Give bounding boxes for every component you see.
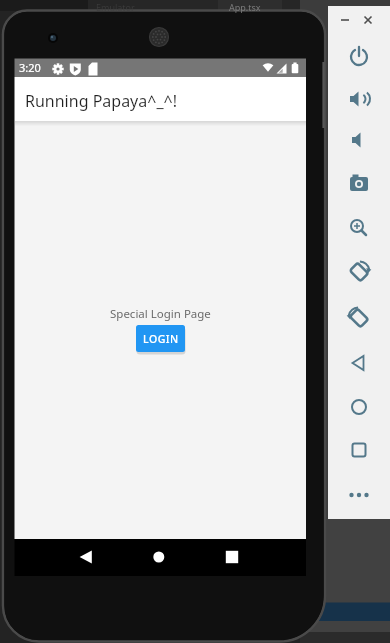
button[interactable]: [342, 39, 376, 73]
staticText: Emulator: [96, 1, 135, 13]
button[interactable]: [342, 167, 376, 201]
button[interactable]: [342, 82, 376, 116]
staticText: LOGIN: [143, 332, 179, 346]
button[interactable]: [342, 433, 376, 467]
button[interactable]: [342, 211, 376, 245]
button[interactable]: [342, 346, 376, 380]
button[interactable]: [342, 255, 376, 289]
staticText: 3:20: [19, 60, 41, 75]
button[interactable]: [209, 535, 249, 565]
staticText: Running Papaya^_^!: [25, 90, 177, 112]
button[interactable]: [140, 535, 180, 565]
staticText: App.tsx: [229, 1, 261, 13]
button[interactable]: [342, 301, 376, 335]
staticText: Special Login Page: [110, 306, 211, 322]
button[interactable]: [342, 478, 376, 512]
button[interactable]: [342, 390, 376, 424]
button[interactable]: [342, 123, 376, 157]
button[interactable]: LOGIN: [136, 325, 185, 352]
button[interactable]: [65, 535, 105, 565]
